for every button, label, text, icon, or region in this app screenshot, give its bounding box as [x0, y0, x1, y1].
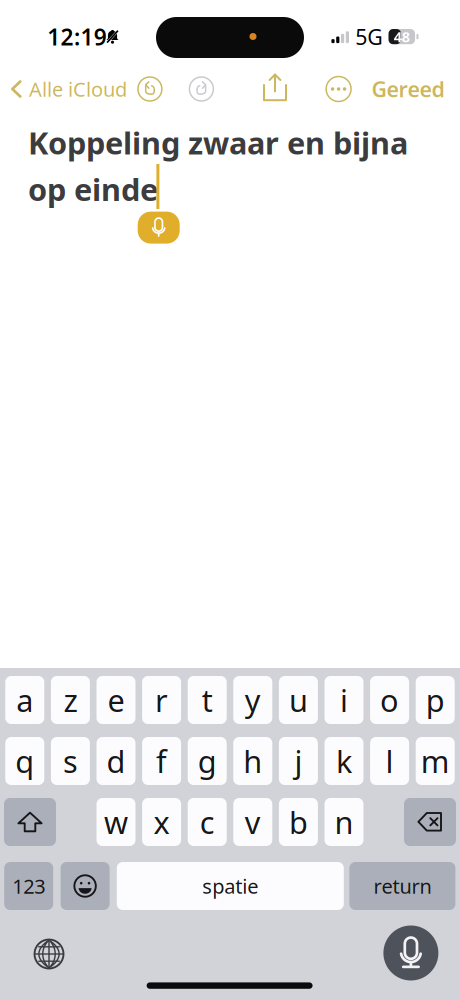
button[interactable]: n: [324, 798, 363, 846]
button[interactable]: f: [142, 737, 181, 785]
staticText: f: [156, 741, 167, 781]
staticText: o: [380, 680, 399, 720]
staticText: c: [200, 802, 215, 842]
button[interactable]: a: [5, 676, 44, 724]
button[interactable]: e: [96, 676, 135, 724]
button[interactable]: Redo: [189, 77, 213, 101]
button[interactable]: b: [279, 798, 318, 846]
staticText: v: [245, 802, 261, 842]
staticText: l: [386, 741, 394, 781]
staticText: i: [340, 680, 348, 720]
staticText: h: [243, 741, 262, 781]
button[interactable]: d: [96, 737, 135, 785]
staticText: y: [245, 680, 261, 720]
button[interactable]: y: [233, 676, 272, 724]
button[interactable]: Delete: [404, 798, 456, 846]
staticText: u: [289, 680, 308, 720]
staticText: op einde: [28, 169, 158, 209]
staticText: k: [336, 741, 352, 781]
button[interactable]: Next keyboard: [0, 0, 460, 1000]
staticText: d: [106, 741, 125, 781]
button[interactable]: spatie: [117, 862, 344, 910]
staticText: Koppeling zwaar en bijna: [28, 122, 408, 163]
staticText: q: [15, 741, 34, 781]
staticText: x: [154, 802, 170, 842]
staticText: r: [155, 680, 168, 720]
button[interactable]: Shift: [4, 798, 56, 846]
staticText: g: [198, 741, 217, 781]
staticText: 5G: [355, 22, 383, 51]
staticText: t: [202, 680, 213, 720]
button[interactable]: x: [142, 798, 181, 846]
button[interactable]: i: [324, 676, 363, 724]
button[interactable]: v: [233, 798, 272, 846]
staticText: 48: [394, 27, 410, 46]
staticText: s: [63, 741, 78, 781]
button[interactable]: t: [188, 676, 227, 724]
button[interactable]: k: [324, 737, 363, 785]
button[interactable]: u: [279, 676, 318, 724]
staticText: a: [16, 680, 33, 720]
staticText: return: [373, 873, 431, 899]
staticText: z: [63, 680, 77, 720]
button[interactable]: Alle iCloud: [10, 71, 130, 107]
staticText: w: [104, 802, 128, 842]
staticText: m: [421, 741, 450, 781]
button[interactable]: z: [51, 676, 90, 724]
staticText: j: [294, 741, 302, 781]
button[interactable]: h: [233, 737, 272, 785]
button[interactable]: Dictate: [0, 0, 460, 1000]
staticText: spatie: [202, 873, 258, 899]
button[interactable]: Emoji: [61, 862, 110, 910]
button[interactable]: return: [349, 862, 455, 910]
staticText: 12:19: [47, 21, 107, 52]
button[interactable]: g: [188, 737, 227, 785]
staticText: n: [334, 802, 353, 842]
button[interactable]: Dictation: [0, 0, 460, 1000]
button[interactable]: Share: [262, 73, 288, 103]
staticText: b: [289, 802, 308, 842]
button[interactable]: l: [370, 737, 409, 785]
staticText: e: [107, 680, 124, 720]
staticText: Gereed: [371, 75, 444, 103]
button[interactable]: s: [51, 737, 90, 785]
button[interactable]: w: [96, 798, 135, 846]
staticText: 123: [12, 873, 45, 899]
button[interactable]: o: [370, 676, 409, 724]
button[interactable]: More: [326, 76, 351, 101]
staticText: Alle iCloud: [29, 76, 127, 102]
button[interactable]: Undo: [138, 77, 162, 101]
button[interactable]: p: [416, 676, 455, 724]
button[interactable]: j: [279, 737, 318, 785]
button[interactable]: c: [188, 798, 227, 846]
staticText: p: [426, 680, 445, 720]
button[interactable]: r: [142, 676, 181, 724]
button[interactable]: 123: [4, 862, 53, 910]
button[interactable]: q: [5, 737, 44, 785]
button[interactable]: m: [416, 737, 455, 785]
button[interactable]: Gereed: [371, 71, 444, 107]
